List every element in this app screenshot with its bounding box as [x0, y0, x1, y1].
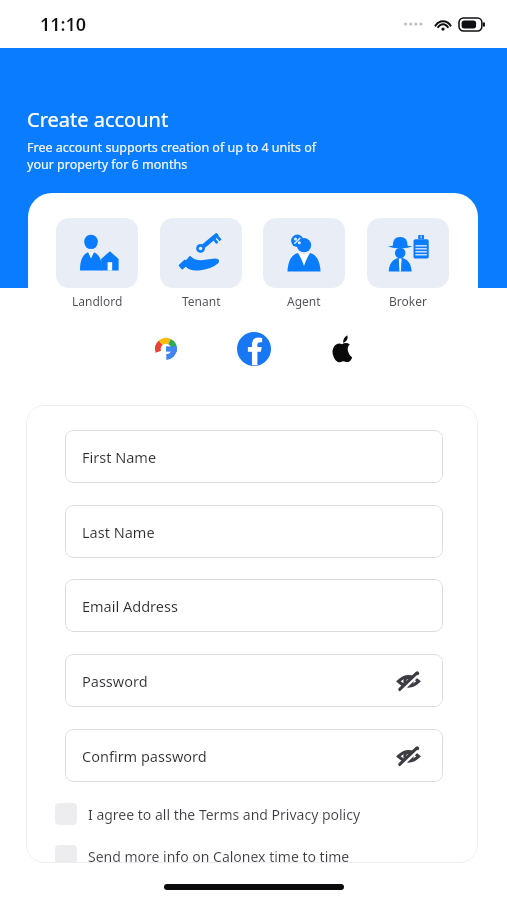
staticText: Create account — [27, 106, 169, 133]
button[interactable]: First Name — [65, 430, 443, 483]
button[interactable]: Password — [65, 654, 443, 707]
button[interactable]: Send more info on Calonex time to time — [55, 845, 350, 863]
button[interactable]: Sign in with Google — [148, 331, 184, 367]
staticText: Tenant — [182, 293, 221, 309]
staticText: Email Address — [82, 596, 178, 616]
button[interactable]: Broker — [364, 218, 452, 309]
staticText: Send more info on Calonex time to time — [88, 847, 350, 863]
button[interactable]: Sign in with Facebook — [236, 331, 272, 367]
button[interactable]: I agree to all the Terms and Privacy pol… — [55, 803, 361, 825]
button[interactable]: Agent — [260, 218, 348, 309]
button[interactable]: Landlord — [53, 218, 141, 309]
staticText: Password — [82, 671, 148, 691]
staticText: Agent — [287, 293, 321, 309]
button[interactable]: Sign in with Apple — [324, 331, 360, 367]
button[interactable]: Show password — [395, 668, 421, 694]
staticText: I agree to all the Terms and Privacy pol… — [88, 805, 361, 824]
staticText: First Name — [82, 447, 157, 467]
staticText: Broker — [389, 293, 427, 309]
staticText: Last Name — [82, 522, 155, 542]
button[interactable]: Tenant — [157, 218, 245, 309]
button[interactable]: Last Name — [65, 505, 443, 558]
staticText: Confirm password — [82, 746, 207, 766]
button[interactable]: Confirm password — [65, 729, 443, 782]
staticText: 11:10 — [40, 12, 87, 37]
button[interactable]: Email Address — [65, 579, 443, 632]
staticText: Landlord — [72, 293, 123, 309]
staticText: Free account supports creation of up to … — [27, 139, 317, 172]
button[interactable]: Show password — [395, 743, 421, 769]
